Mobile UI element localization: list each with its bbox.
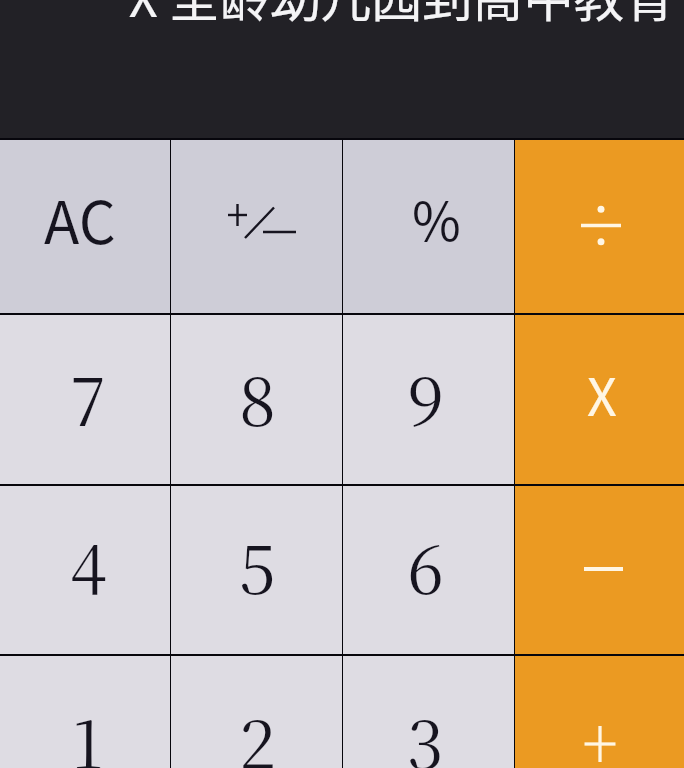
button[interactable]: Divide xyxy=(515,140,684,313)
button[interactable]: 2 xyxy=(171,656,342,768)
button[interactable]: % xyxy=(343,140,514,313)
staticText: % xyxy=(412,180,461,257)
staticText: 8 xyxy=(239,350,276,445)
staticText: 6 xyxy=(407,518,444,613)
button[interactable]: 9 xyxy=(343,315,514,484)
staticText: X xyxy=(587,356,617,431)
button[interactable]: X xyxy=(515,315,684,484)
staticText: 2 xyxy=(239,693,276,768)
button[interactable]: 8 xyxy=(171,315,342,484)
button[interactable]: 3 xyxy=(343,656,514,768)
button[interactable]: 5 xyxy=(171,486,342,654)
staticText: 4 xyxy=(70,518,107,613)
button[interactable]: 7 xyxy=(0,315,170,484)
staticText: 9 xyxy=(407,350,445,445)
button[interactable]: AC xyxy=(0,140,170,313)
staticText: AC xyxy=(44,177,116,261)
staticText: X 全龄幼儿园到高中教育 xyxy=(0,0,675,31)
button[interactable]: Plus xyxy=(515,656,684,768)
button[interactable]: Plus minus xyxy=(171,140,342,313)
button[interactable]: 4 xyxy=(0,486,170,654)
button[interactable]: 6 xyxy=(343,486,514,654)
staticText: 7 xyxy=(70,350,107,445)
button[interactable]: 1 xyxy=(0,656,170,768)
staticText: 3 xyxy=(407,693,444,768)
staticText: 1 xyxy=(72,693,104,768)
button[interactable]: Minus xyxy=(515,486,684,654)
staticText: 5 xyxy=(239,518,276,613)
